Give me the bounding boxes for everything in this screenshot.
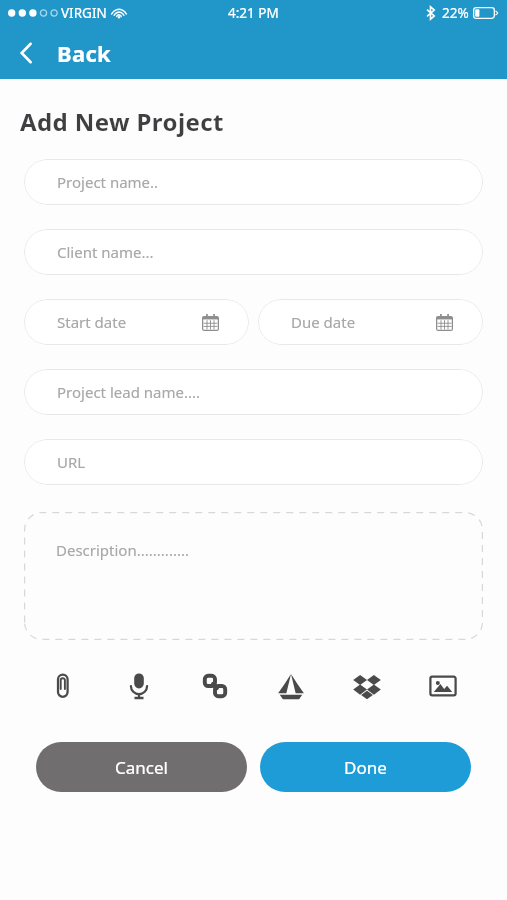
staticText: 4:21 PM [228, 4, 279, 22]
staticText: 22% [442, 4, 469, 22]
staticText: Client name... [57, 242, 154, 262]
button[interactable]: Add link [177, 660, 253, 712]
staticText: Done [344, 756, 387, 779]
button[interactable]: URL [24, 439, 483, 485]
button[interactable]: Back [0, 32, 128, 74]
button[interactable]: Start date [24, 299, 249, 345]
staticText: Project name.. [57, 172, 159, 192]
button[interactable]: Due date [258, 299, 483, 345]
staticText: VIRGIN [61, 4, 107, 22]
staticText: Add New Project [20, 105, 224, 138]
button[interactable]: Project name.. [24, 159, 483, 205]
staticText: Cancel [115, 756, 168, 779]
staticText: Due date [291, 312, 356, 332]
button[interactable]: Google Drive [253, 660, 329, 712]
button[interactable]: Dropbox [329, 660, 405, 712]
button[interactable]: Record audio [101, 660, 177, 712]
button[interactable]: Client name... [24, 229, 483, 275]
staticText: Description............. [56, 540, 189, 560]
button[interactable]: Description............. [24, 512, 483, 640]
staticText: Back [57, 38, 112, 68]
staticText: Start date [57, 312, 127, 332]
button[interactable]: Project lead name.... [24, 369, 483, 415]
staticText: URL [57, 452, 86, 472]
button[interactable]: Done [260, 742, 471, 792]
staticText: Project lead name.... [57, 382, 201, 402]
button[interactable]: Add image [405, 660, 481, 712]
button[interactable]: Attach file [26, 660, 101, 712]
button[interactable]: Cancel [36, 742, 247, 792]
